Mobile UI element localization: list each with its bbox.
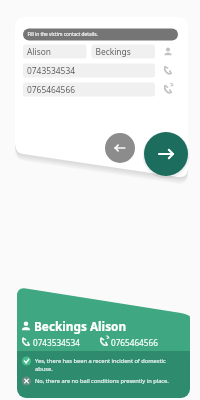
button[interactable]: Next bbox=[72, 66, 94, 88]
button[interactable]: Victim contact details form bbox=[8, 9, 95, 89]
button[interactable]: Back bbox=[53, 67, 68, 82]
button[interactable]: Beckings Alison summary bbox=[9, 144, 96, 200]
